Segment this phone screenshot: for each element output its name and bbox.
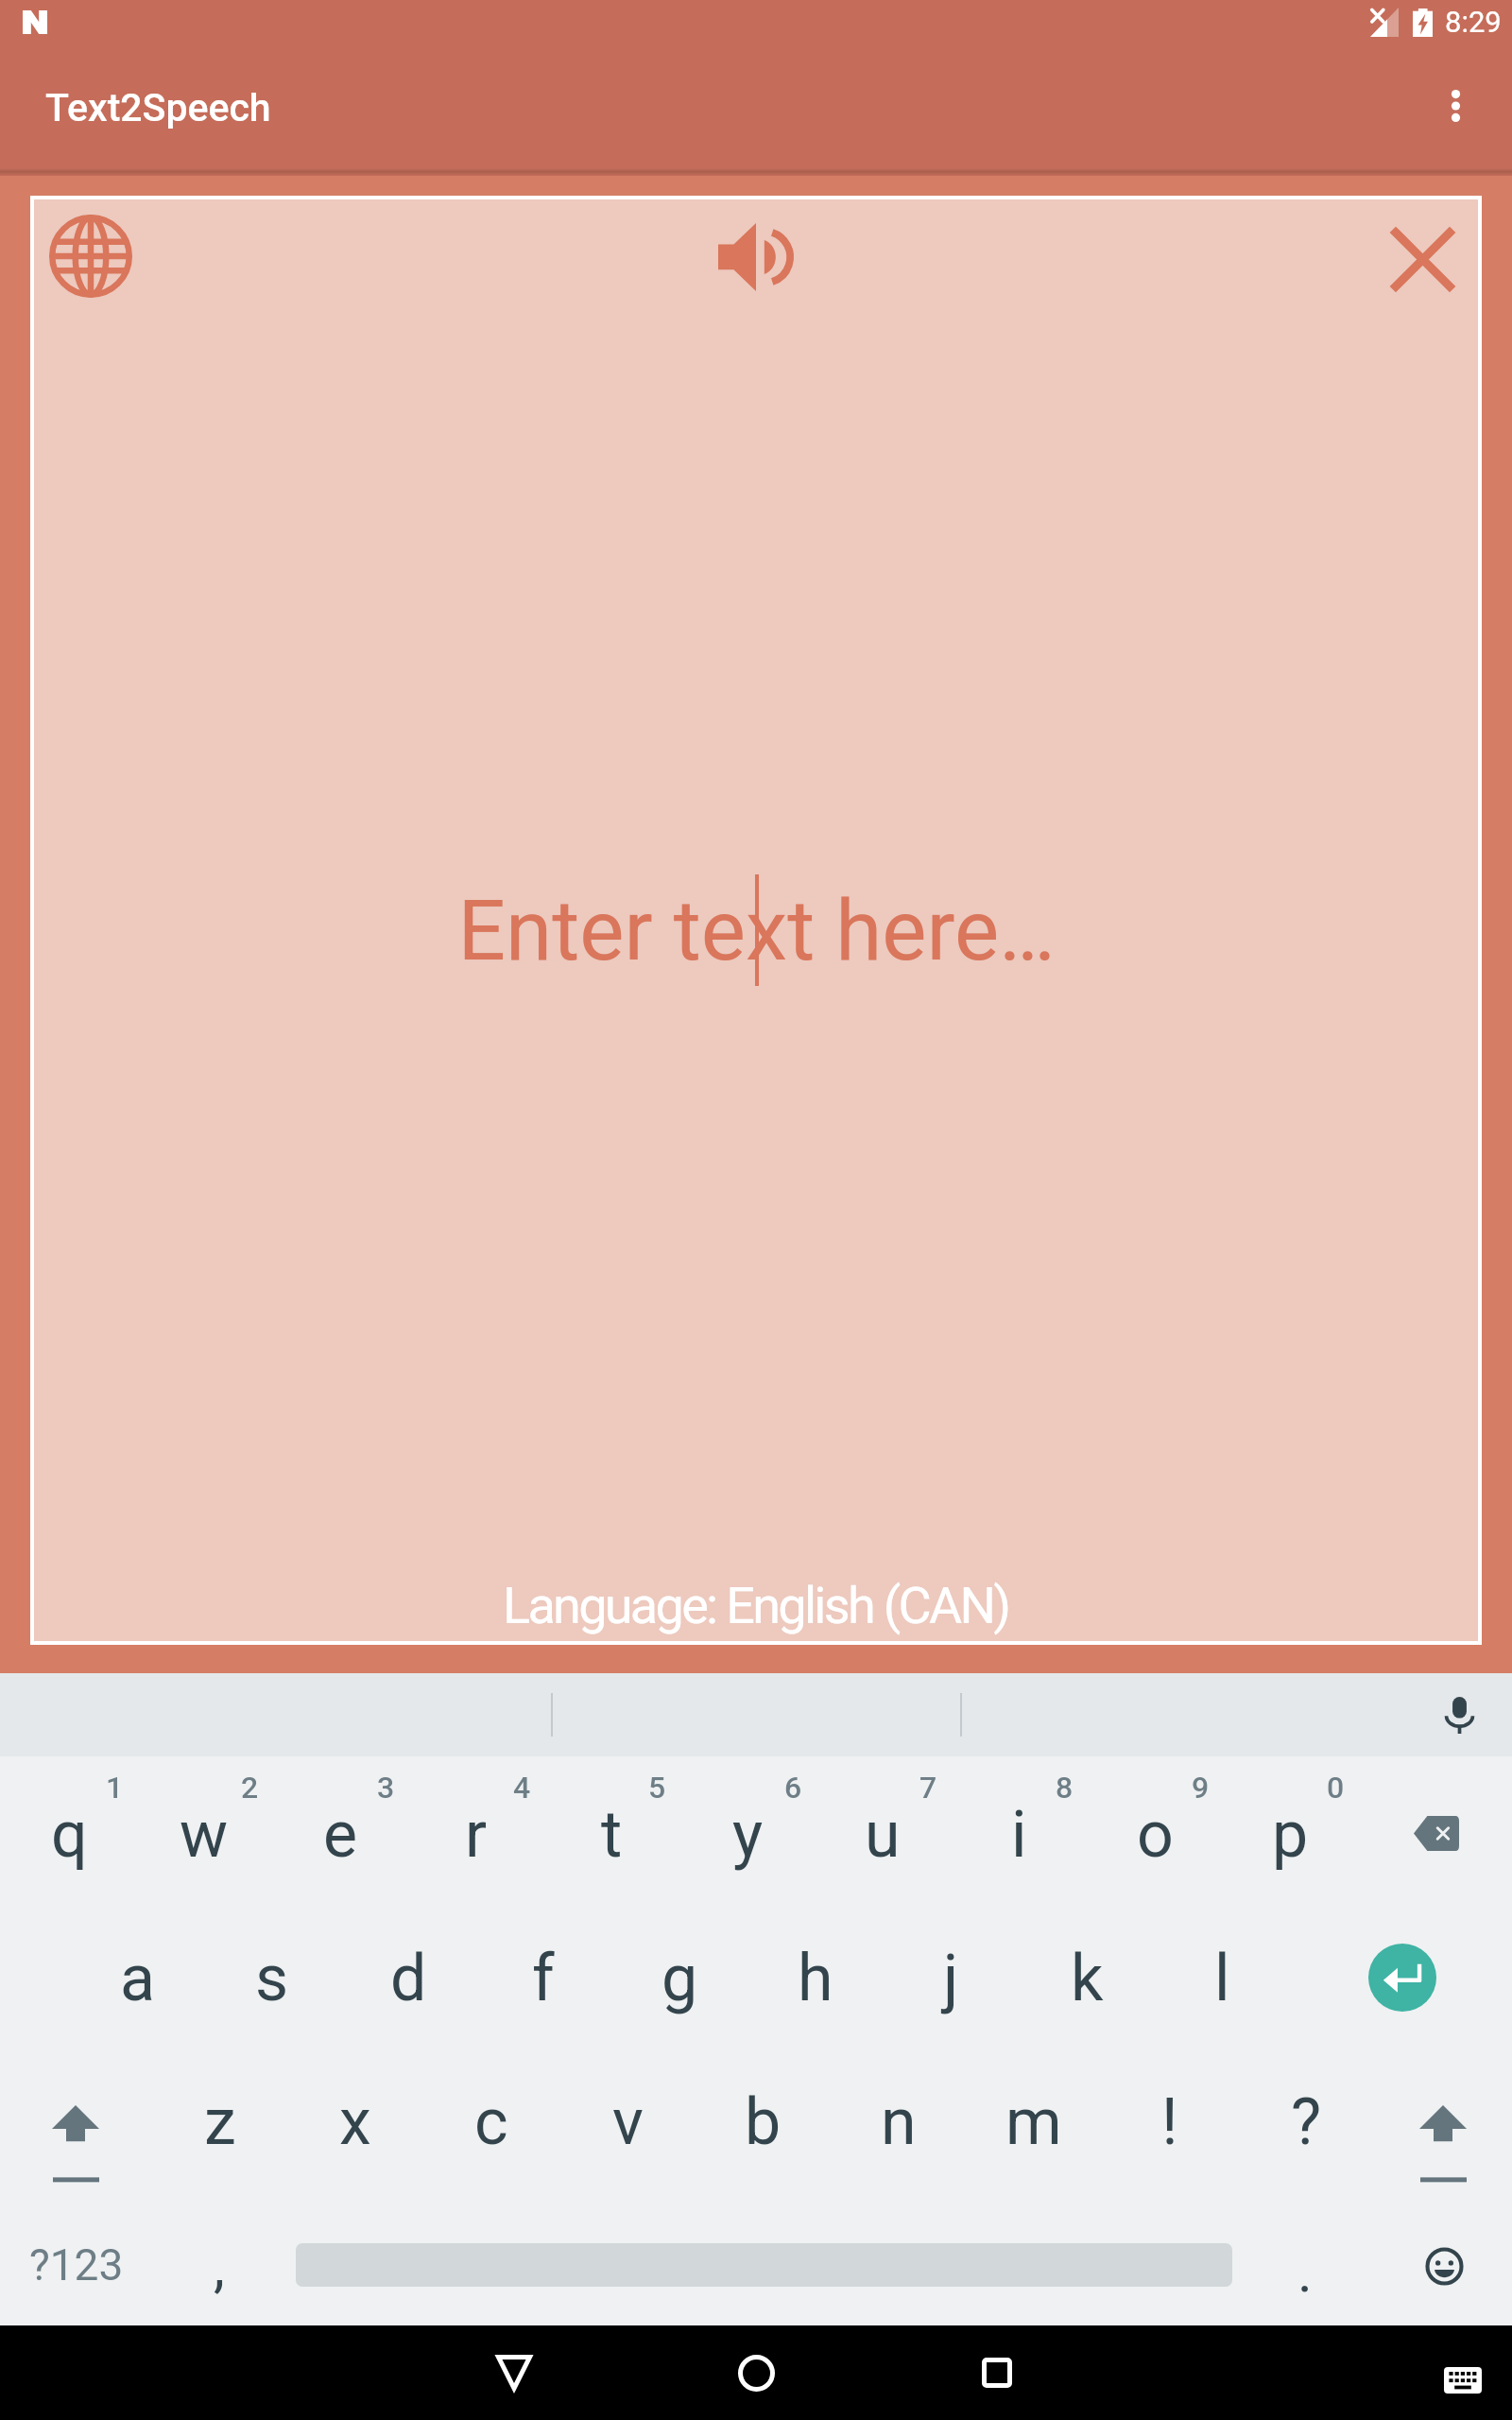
staticText: 3 bbox=[377, 1770, 395, 1806]
button[interactable]: d bbox=[340, 1900, 476, 2044]
staticText: m bbox=[1005, 2084, 1062, 2160]
staticText: j bbox=[943, 1941, 959, 2016]
staticText: s bbox=[255, 1941, 289, 2016]
button[interactable]: a bbox=[69, 1900, 205, 2044]
staticText: o bbox=[1137, 1797, 1174, 1873]
button[interactable]: Space bbox=[287, 2235, 1241, 2295]
staticText: t bbox=[601, 1797, 623, 1873]
button[interactable]: Text input field bbox=[34, 199, 1478, 1641]
staticText: v bbox=[612, 2084, 644, 2160]
button[interactable]: Speak bbox=[714, 216, 798, 299]
button[interactable]: k bbox=[1019, 1900, 1155, 2044]
button[interactable]: n bbox=[831, 2044, 967, 2187]
staticText: ! bbox=[1161, 2084, 1178, 2160]
button[interactable]: f bbox=[475, 1900, 611, 2044]
button[interactable]: b bbox=[695, 2044, 831, 2187]
button[interactable]: ! bbox=[1102, 2044, 1238, 2187]
button[interactable]: Shift bbox=[8, 2044, 144, 2187]
staticText: 9 bbox=[1192, 1770, 1210, 1806]
staticText: a bbox=[120, 1941, 155, 2016]
button[interactable]: Back bbox=[469, 2327, 559, 2418]
staticText: w bbox=[180, 1797, 229, 1873]
staticText: 8:29 bbox=[1445, 5, 1502, 39]
staticText: 2 bbox=[241, 1770, 259, 1806]
staticText: c bbox=[474, 2084, 508, 2160]
staticText: g bbox=[661, 1941, 698, 2016]
button[interactable]: Emoji bbox=[1376, 2187, 1512, 2325]
button[interactable]: 5 bbox=[543, 1756, 679, 1900]
button[interactable]: x bbox=[287, 2044, 423, 2187]
staticText: u bbox=[865, 1797, 901, 1873]
button[interactable]: ? bbox=[1238, 2044, 1374, 2187]
button[interactable]: c bbox=[423, 2044, 559, 2187]
button[interactable]: 0 bbox=[1222, 1756, 1358, 1900]
staticText: p bbox=[1272, 1797, 1309, 1873]
staticText: 5 bbox=[648, 1770, 666, 1806]
staticText: 8 bbox=[1056, 1770, 1074, 1806]
staticText: r bbox=[465, 1797, 488, 1873]
button[interactable]: 6 bbox=[679, 1756, 816, 1900]
staticText: ? bbox=[1291, 2084, 1322, 2160]
button[interactable]: h bbox=[747, 1900, 884, 2044]
button[interactable]: 4 bbox=[408, 1756, 544, 1900]
staticText: e bbox=[323, 1797, 358, 1873]
staticText: f bbox=[532, 1941, 555, 2016]
button[interactable]: More options bbox=[1410, 60, 1501, 151]
button[interactable]: Switch keyboard bbox=[1430, 2347, 1496, 2413]
staticText: Enter text here… bbox=[457, 881, 1056, 979]
button[interactable]: 3 bbox=[272, 1756, 408, 1900]
button[interactable]: . bbox=[1237, 2187, 1373, 2325]
staticText: z bbox=[204, 2084, 236, 2160]
staticText: 1 bbox=[106, 1770, 124, 1806]
staticText: , bbox=[214, 2233, 225, 2299]
button[interactable]: z bbox=[152, 2044, 288, 2187]
staticText: 6 bbox=[784, 1770, 802, 1806]
button[interactable]: Clear text bbox=[1381, 217, 1464, 301]
button[interactable]: l bbox=[1154, 1900, 1290, 2044]
staticText: n bbox=[881, 2084, 917, 2160]
button[interactable]: 1 bbox=[1, 1756, 137, 1900]
staticText: 4 bbox=[513, 1770, 531, 1806]
staticText: ?123 bbox=[29, 2239, 124, 2290]
button[interactable]: , bbox=[151, 2187, 287, 2325]
button[interactable]: ?123 bbox=[9, 2187, 145, 2325]
staticText: i bbox=[1011, 1797, 1027, 1873]
staticText: h bbox=[798, 1941, 833, 2016]
staticText: Text2Speech bbox=[45, 85, 271, 130]
staticText: d bbox=[390, 1941, 427, 2016]
button[interactable]: 9 bbox=[1087, 1756, 1223, 1900]
staticText: x bbox=[339, 2084, 371, 2160]
button[interactable]: 8 bbox=[951, 1756, 1087, 1900]
button[interactable]: Delete bbox=[1358, 1756, 1494, 1900]
staticText: k bbox=[1071, 1941, 1104, 2016]
button[interactable]: g bbox=[611, 1900, 747, 2044]
button[interactable]: Recents bbox=[952, 2327, 1042, 2418]
button[interactable]: v bbox=[559, 2044, 696, 2187]
button[interactable]: 2 bbox=[136, 1756, 272, 1900]
staticText: . bbox=[1297, 2238, 1313, 2305]
button[interactable]: Home bbox=[711, 2327, 801, 2418]
staticText: 7 bbox=[919, 1770, 937, 1806]
staticText: 0 bbox=[1327, 1770, 1345, 1806]
staticText: l bbox=[1214, 1941, 1230, 2016]
staticText: q bbox=[51, 1797, 88, 1873]
staticText: y bbox=[732, 1797, 764, 1873]
staticText: b bbox=[745, 2084, 782, 2160]
button[interactable]: Shift bbox=[1375, 2044, 1511, 2187]
button[interactable]: j bbox=[883, 1900, 1019, 2044]
button[interactable]: Enter bbox=[1334, 1900, 1470, 2044]
staticText: Language: English (CAN) bbox=[503, 1576, 1009, 1635]
button[interactable]: s bbox=[204, 1900, 340, 2044]
button[interactable]: Voice input bbox=[1423, 1679, 1495, 1751]
button[interactable]: Change language bbox=[49, 215, 132, 298]
button[interactable]: 7 bbox=[815, 1756, 951, 1900]
button[interactable]: m bbox=[966, 2044, 1102, 2187]
